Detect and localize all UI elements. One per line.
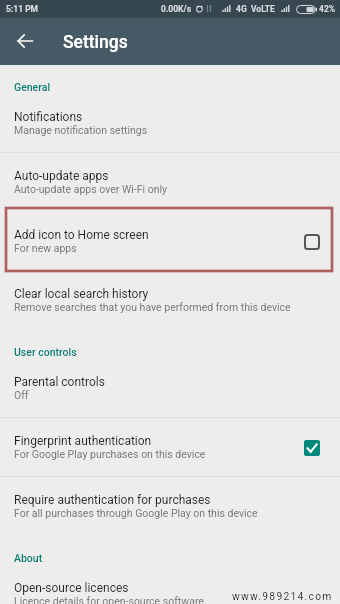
staticText: Licence details for open-source software [14, 595, 204, 604]
staticText: VoLTE [251, 4, 275, 14]
button[interactable]: Require authentication for purchases [0, 477, 340, 536]
staticText: 0.00K/s [161, 4, 192, 14]
staticText: Add icon to Home screen [14, 228, 149, 242]
staticText: Settings [63, 32, 128, 53]
staticText: General [14, 81, 51, 93]
button[interactable]: Auto-update apps [0, 153, 340, 212]
button[interactable]: Clear local search history [0, 271, 340, 330]
staticText: Manage notification settings [14, 124, 148, 136]
staticText: Fingerprint authentication [14, 434, 152, 448]
staticText: Remove searches that you have performed … [14, 301, 291, 313]
staticText: User controls [14, 346, 77, 358]
button[interactable]: Notifications [0, 94, 340, 153]
button[interactable]: Open-source licences [0, 565, 340, 604]
staticText: For Google Play purchases on this device [14, 448, 206, 460]
staticText: Clear local search history [14, 287, 149, 301]
staticText: 42% [319, 4, 336, 14]
button[interactable]: Parental controls [0, 359, 340, 418]
staticText: 4G [236, 4, 247, 14]
staticText: 5:11 PM [6, 4, 39, 14]
button[interactable]: Add icon to Home screen [0, 212, 340, 271]
staticText: Require authentication for purchases [14, 493, 211, 507]
staticText: Notifications [14, 110, 83, 124]
staticText: For new apps [14, 242, 77, 254]
button[interactable]: Fingerprint authentication [0, 418, 340, 477]
staticText: Auto-update apps over Wi-Fi only [14, 183, 167, 195]
staticText: For all purchases through Google Play on… [14, 507, 258, 519]
staticText: www.989214.com [232, 590, 333, 602]
staticText: About [14, 552, 43, 564]
staticText: Open-source licences [14, 581, 129, 595]
staticText: Parental controls [14, 375, 105, 389]
staticText: Off [14, 389, 29, 401]
button[interactable]: Navigate up [8, 24, 42, 58]
staticText: Auto-update apps [14, 169, 109, 183]
